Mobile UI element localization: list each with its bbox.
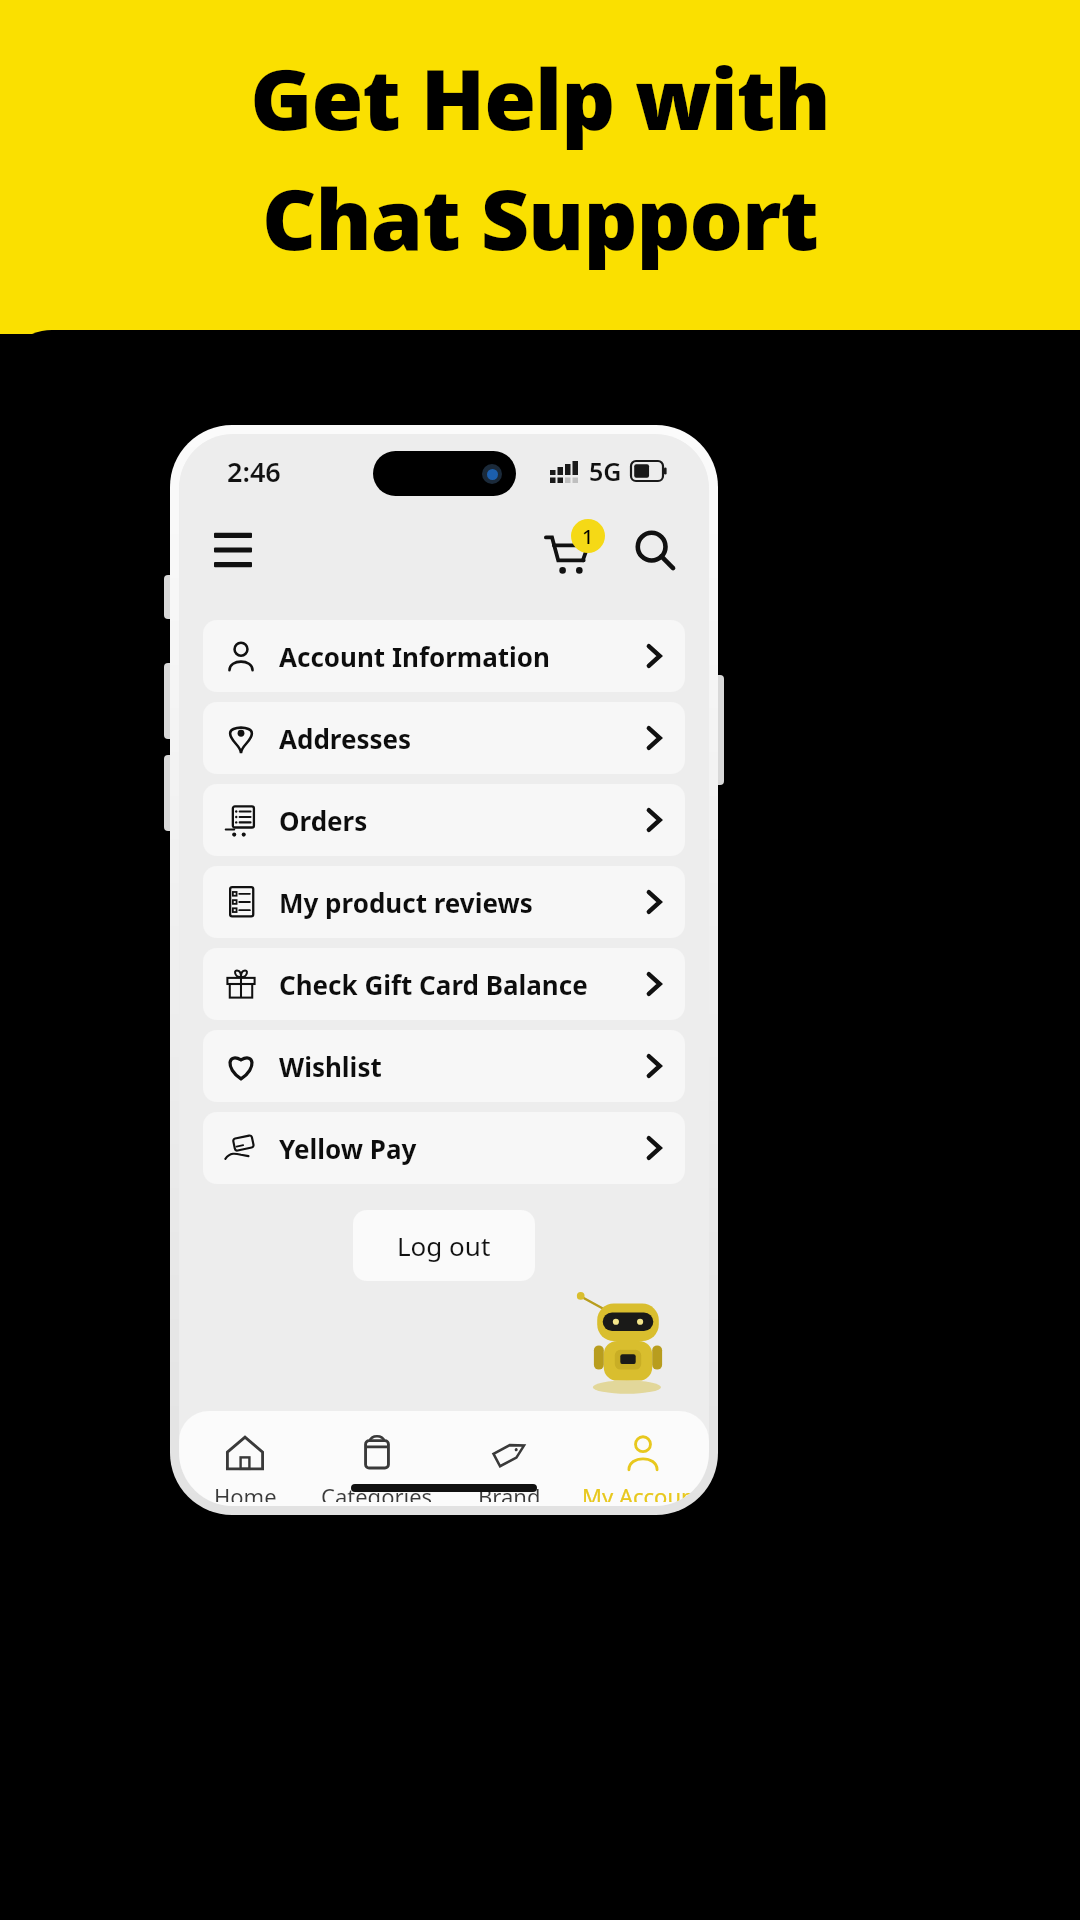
button[interactable]: Home — [179, 1427, 311, 1506]
staticText: Account Information — [279, 639, 550, 674]
staticText: Check Gift Card Balance — [279, 967, 588, 1002]
staticText: Home — [214, 1481, 277, 1502]
button[interactable]: Cart — [543, 519, 605, 581]
staticText: Chat Support — [262, 160, 818, 274]
button[interactable]: My product reviews — [203, 866, 685, 938]
button[interactable]: Yellow Pay — [203, 1112, 685, 1184]
staticText: 5G — [589, 454, 622, 488]
staticText: 2:46 — [227, 453, 281, 490]
staticText: Brand — [478, 1481, 541, 1502]
staticText: My product reviews — [279, 885, 533, 920]
staticText: Addresses — [279, 721, 412, 756]
staticText: Log out — [397, 1228, 491, 1263]
button[interactable]: Brand — [443, 1427, 576, 1506]
button[interactable]: Orders — [203, 784, 685, 856]
button[interactable]: Wishlist — [203, 1030, 685, 1102]
staticText: My Account — [582, 1481, 703, 1502]
button[interactable]: Addresses — [203, 702, 685, 774]
button[interactable]: Categories — [311, 1427, 443, 1506]
staticText: Get Help with — [250, 40, 830, 154]
staticText: Yellow Pay — [279, 1131, 417, 1166]
button[interactable]: Check Gift Card Balance — [203, 948, 685, 1020]
button[interactable]: My Account — [576, 1427, 709, 1506]
button[interactable]: Account Information — [203, 620, 685, 692]
button[interactable]: Search — [627, 522, 683, 578]
staticText: Orders — [279, 803, 368, 838]
staticText: 1 — [582, 523, 594, 550]
staticText: Categories — [321, 1481, 433, 1502]
button[interactable]: Menu — [207, 524, 259, 576]
staticText: Wishlist — [279, 1049, 382, 1084]
button[interactable]: Log out — [353, 1210, 535, 1281]
button[interactable]: Chat support bot — [573, 1286, 683, 1396]
